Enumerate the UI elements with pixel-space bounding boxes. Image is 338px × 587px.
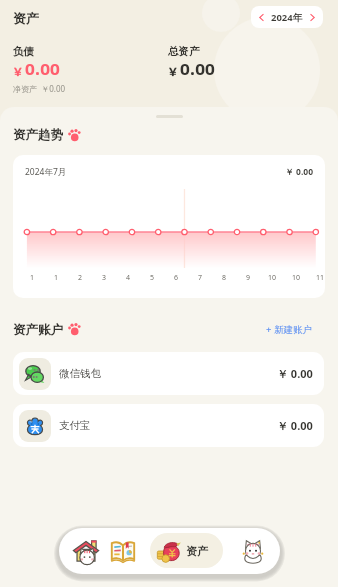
staticText: 2024年: [271, 11, 303, 24]
staticText: 资产趋势: [13, 127, 63, 143]
staticText: 0.00: [25, 59, 60, 80]
staticText: ￥ 0.00: [277, 366, 313, 381]
staticText: + 新建账户: [266, 323, 312, 336]
staticText: 4: [126, 273, 131, 283]
staticText: 负债: [13, 45, 34, 58]
staticText: 净资产 ￥0.00: [13, 83, 66, 94]
staticText: 资产: [186, 544, 208, 558]
button[interactable]: 2024年7月: [13, 155, 325, 298]
button[interactable]: 2024年: [251, 6, 323, 28]
staticText: ￥: [167, 64, 179, 80]
staticText: 3: [102, 273, 107, 283]
staticText: 总资产: [168, 45, 200, 58]
staticText: 微信钱包: [59, 367, 101, 380]
button[interactable]: 微信钱包: [13, 352, 324, 395]
staticText: 1: [54, 273, 59, 283]
staticText: ￥: [12, 64, 24, 80]
staticText: 11: [316, 273, 325, 283]
button[interactable]: 资产: [150, 533, 223, 568]
staticText: 10: [292, 273, 301, 283]
staticText: 2024年7月: [25, 166, 67, 178]
staticText: 9: [246, 273, 251, 283]
button[interactable]: Home: [70, 535, 102, 567]
staticText: 支付宝: [59, 419, 91, 432]
button[interactable]: Ledger: [107, 535, 139, 567]
staticText: 10: [268, 273, 277, 283]
staticText: 7: [198, 273, 203, 283]
staticText: 资产: [13, 10, 39, 26]
staticText: 1: [30, 273, 35, 283]
staticText: 8: [222, 273, 227, 283]
staticText: 5: [150, 273, 155, 283]
staticText: 2: [78, 273, 83, 283]
button[interactable]: Profile: [237, 536, 269, 568]
staticText: 资产账户: [13, 322, 63, 338]
staticText: ￥ 0.00: [277, 418, 313, 433]
staticText: ￥ 0.00: [263, 166, 313, 178]
staticText: 0.00: [180, 59, 215, 80]
button[interactable]: 支付宝: [13, 404, 324, 447]
staticText: 6: [174, 273, 179, 283]
button[interactable]: + 新建账户: [262, 319, 316, 340]
